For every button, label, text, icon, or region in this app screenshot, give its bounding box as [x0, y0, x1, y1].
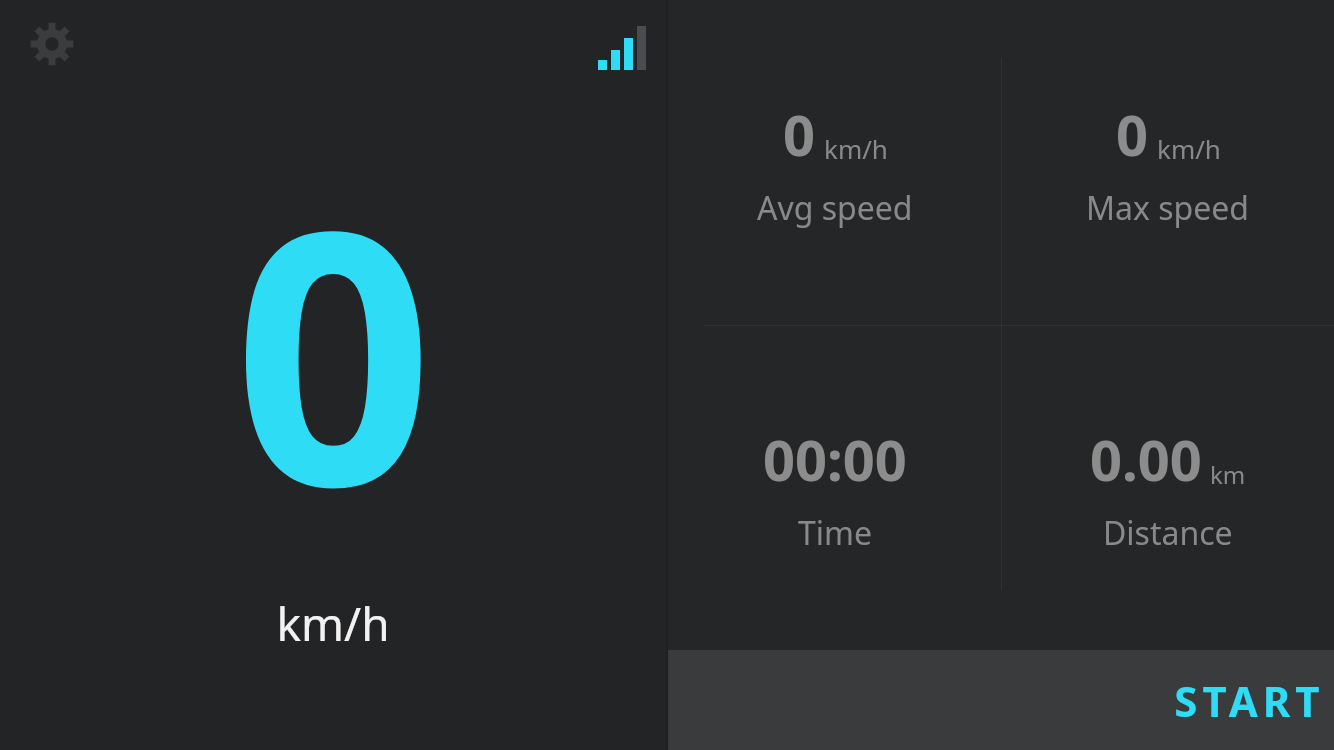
staticText: START TIMER	[1174, 672, 1334, 729]
button[interactable]: START TIMER	[668, 650, 1334, 750]
staticText: km	[1210, 458, 1246, 491]
button[interactable]: 0	[668, 0, 1001, 325]
button[interactable]: Settings	[28, 20, 76, 68]
button[interactable]: 0	[1002, 0, 1334, 325]
staticText: km/h	[1157, 131, 1221, 166]
staticText: 00:00	[763, 421, 907, 497]
staticText: 0	[233, 111, 434, 588]
staticText: Max speed	[1086, 186, 1250, 230]
button[interactable]: GPS signal strength	[592, 18, 648, 76]
button[interactable]: 0.00	[1002, 326, 1334, 650]
staticText: 0	[1116, 96, 1149, 172]
staticText: 0.00	[1090, 421, 1202, 497]
staticText: km/h	[276, 592, 390, 655]
staticText: Distance	[1103, 511, 1233, 555]
button[interactable]: 00:00	[668, 326, 1001, 650]
staticText: km/h	[824, 131, 888, 166]
staticText: Time	[798, 511, 873, 555]
staticText: Avg speed	[757, 186, 913, 230]
staticText: 0	[783, 96, 816, 172]
